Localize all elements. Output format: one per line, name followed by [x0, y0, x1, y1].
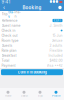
staticText: Trip — [2, 12, 8, 16]
staticText: ●●● — [50, 0, 59, 4]
staticText: 9:41 — [2, 0, 11, 5]
button[interactable]: Profile — [48, 88, 64, 100]
staticText: Deluxe — [51, 38, 62, 42]
button[interactable]: Rate plan — [1, 48, 62, 53]
button[interactable]: Stay — [8, 11, 14, 18]
button[interactable]: Reference — [1, 18, 62, 23]
staticText: Plan — [14, 10, 20, 18]
button[interactable]: Total — [1, 58, 62, 63]
button[interactable]: Guests — [1, 43, 62, 48]
button[interactable]: Confirm booking — [1, 69, 63, 75]
staticText: Profile — [52, 94, 60, 97]
staticText: Payment — [1, 63, 15, 67]
button[interactable]: Trip — [1, 11, 8, 18]
button[interactable]: Check in — [1, 28, 62, 33]
staticText: 2 adults — [49, 43, 62, 47]
staticText: Check in — [1, 28, 15, 32]
button[interactable]: Payment — [1, 63, 62, 68]
staticText: Guest name — [1, 23, 20, 27]
staticText: Search — [20, 94, 27, 97]
staticText: Breakfast — [1, 53, 16, 57]
staticText: Included — [48, 53, 62, 57]
staticText: 15 Jun — [52, 33, 62, 37]
button[interactable]: Back — [1, 4, 7, 11]
staticText: Confirm booking — [17, 70, 46, 75]
staticText: Room type — [1, 38, 18, 42]
staticText: Trips — [37, 94, 42, 97]
staticText: Visa ••42 — [46, 63, 62, 67]
button[interactable]: Breakfast — [1, 53, 62, 58]
button[interactable]: Search — [16, 88, 32, 100]
staticText: Guests — [1, 43, 12, 47]
button[interactable]: Profile — [57, 4, 63, 11]
staticText: Booking — [22, 5, 41, 10]
staticText: Home — [5, 94, 11, 97]
button[interactable]: Home — [0, 88, 16, 100]
staticText: Rate plan — [1, 48, 16, 52]
staticText: Total — [1, 58, 9, 62]
staticText: $482.00 — [49, 58, 62, 62]
staticText: ‹ — [3, 4, 5, 11]
button[interactable]: Trips — [32, 88, 48, 100]
staticText: Stay — [8, 10, 14, 18]
staticText: Reference — [1, 18, 17, 22]
button[interactable]: Plan — [14, 11, 21, 18]
staticText: Check out — [1, 33, 17, 37]
button[interactable]: Guest name — [1, 23, 62, 28]
staticText: EDIT — [54, 19, 61, 22]
button[interactable]: Room type — [1, 38, 62, 43]
button[interactable]: Check out — [1, 33, 62, 38]
staticText: J. Smith — [49, 23, 62, 27]
staticText: Flexible — [49, 48, 62, 52]
